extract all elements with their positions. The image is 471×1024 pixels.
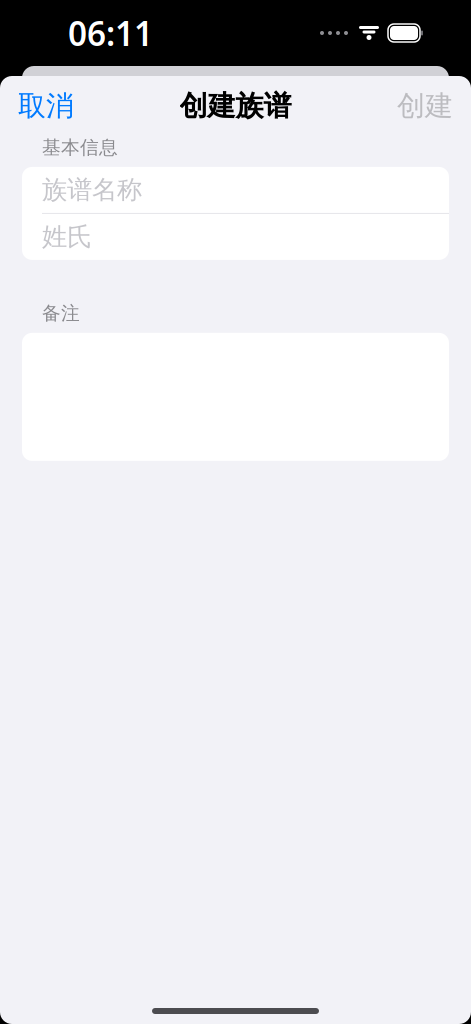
button[interactable]: 姓氏: [22, 214, 449, 260]
button[interactable]: 创建: [379, 79, 471, 133]
staticText: 基本信息: [42, 136, 118, 159]
staticText: 族谱名称: [42, 174, 142, 205]
staticText: 06:11: [68, 11, 153, 55]
button[interactable]: 族谱名称: [22, 167, 449, 213]
staticText: 创建: [397, 89, 453, 123]
staticText: 取消: [18, 89, 74, 123]
staticText: 姓氏: [42, 221, 92, 252]
button[interactable]: 取消: [0, 79, 92, 133]
staticText: 备注: [42, 302, 80, 325]
staticText: 创建族谱: [179, 89, 291, 123]
